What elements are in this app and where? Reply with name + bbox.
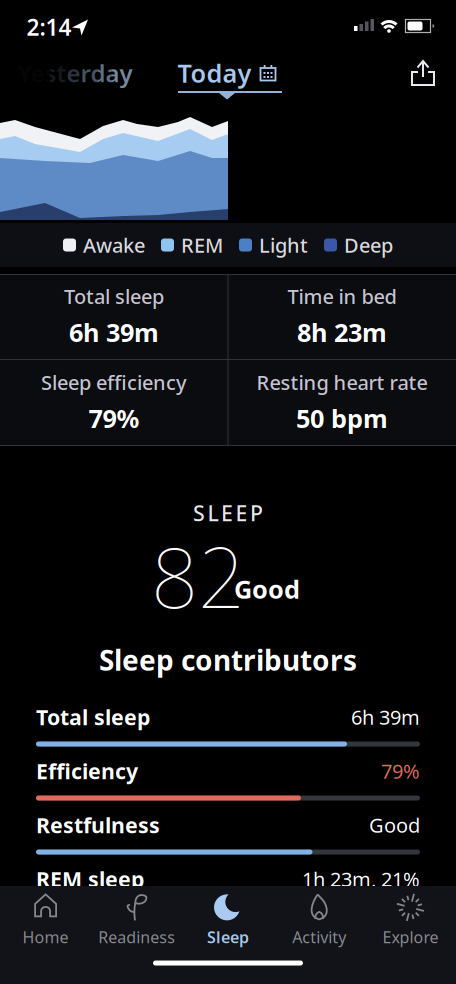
staticText: Sleep efficiency [41, 369, 187, 395]
button[interactable]: Yesterday [0, 53, 150, 93]
staticText: 6h 39m [351, 704, 420, 730]
staticText: 50 bpm [296, 401, 388, 435]
staticText: Home [23, 926, 69, 948]
staticText: Sleep contributors [99, 641, 357, 679]
staticText: 79% [381, 758, 420, 784]
staticText: SLEEP [193, 499, 263, 527]
staticText: 2:14 [26, 12, 71, 42]
staticText: REM sleep [36, 865, 144, 893]
staticText: Readiness [98, 926, 175, 948]
staticText: Total sleep [64, 283, 164, 309]
staticText: Efficiency [36, 757, 138, 785]
staticText: Activity [292, 926, 346, 948]
staticText: Awake [83, 232, 145, 258]
button[interactable]: Today [177, 53, 276, 93]
staticText: 79% [88, 401, 139, 435]
staticText: Total sleep [36, 703, 150, 731]
staticText: Today [177, 56, 251, 90]
button[interactable]: Sleep [182, 888, 273, 950]
staticText: 1h 23m, 21% [302, 866, 420, 892]
staticText: Light [259, 232, 308, 258]
button[interactable]: Explore [365, 888, 456, 950]
staticText: 8h 23m [297, 315, 387, 349]
staticText: REM [181, 232, 223, 258]
staticText: Good [234, 572, 300, 606]
staticText: Time in bed [287, 283, 396, 309]
staticText: Restfulness [36, 811, 160, 839]
staticText: Yesterday [17, 57, 132, 89]
staticText: 82 [151, 521, 245, 631]
staticText: Good [369, 812, 420, 838]
button[interactable]: Home [0, 888, 91, 950]
button[interactable]: Activity [274, 888, 365, 950]
button[interactable]: Readiness [91, 888, 182, 950]
button[interactable]: Share [401, 51, 445, 95]
staticText: Deep [344, 232, 393, 258]
staticText: Explore [382, 926, 438, 948]
staticText: Resting heart rate [256, 369, 427, 395]
staticText: Sleep [207, 926, 249, 948]
staticText: 6h 39m [69, 315, 159, 349]
